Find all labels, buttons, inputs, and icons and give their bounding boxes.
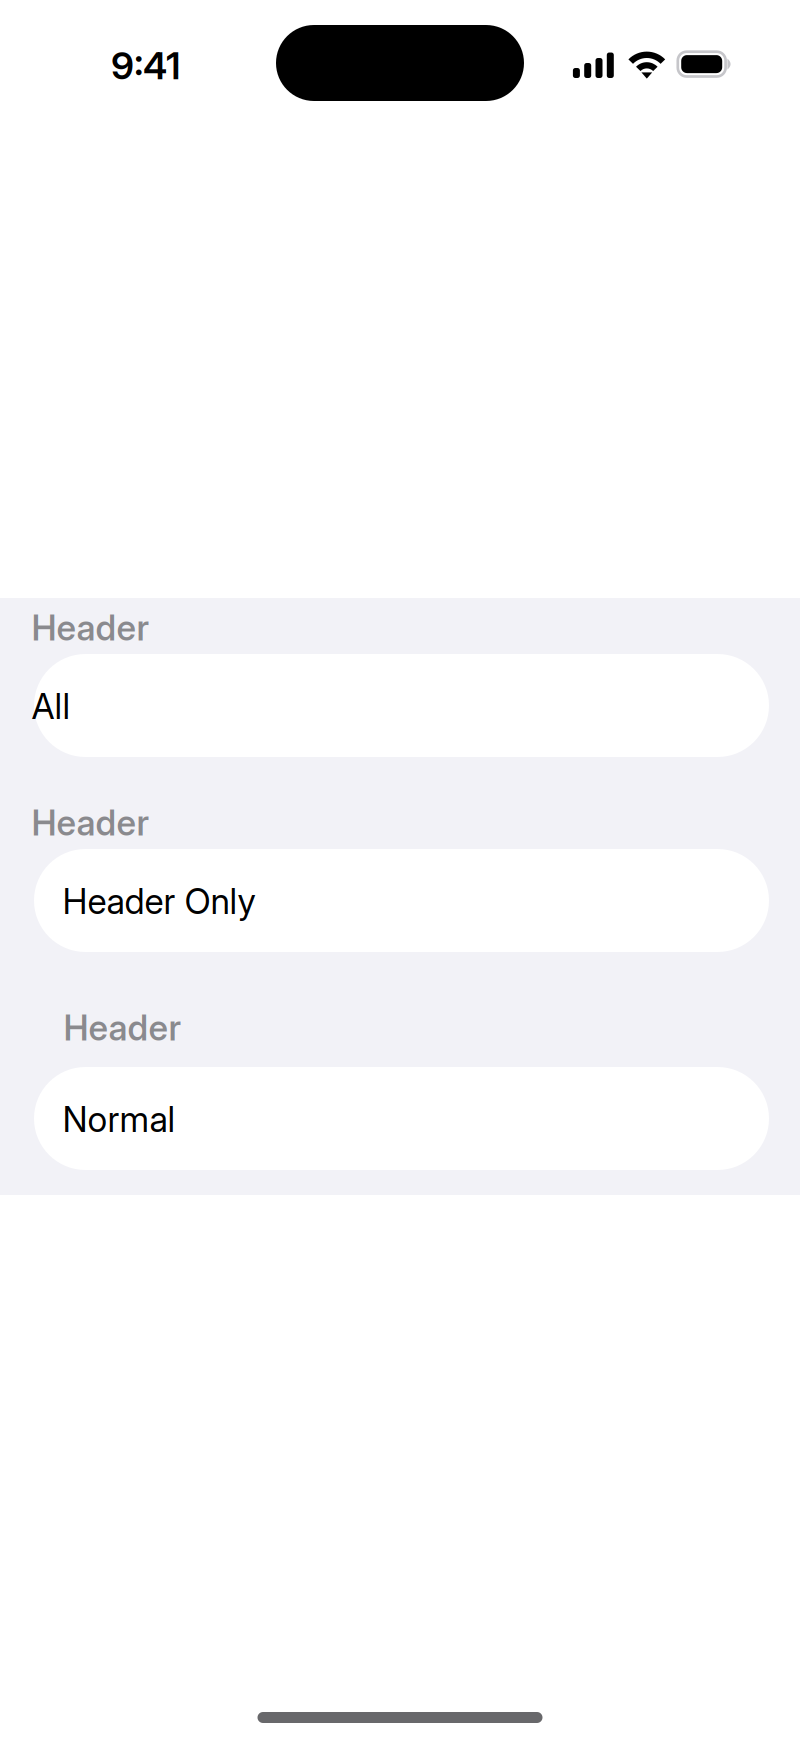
staticText: All	[31, 685, 70, 727]
staticText: Header Only	[62, 880, 255, 922]
staticText: 9:41	[111, 43, 181, 88]
button[interactable]: Header Only	[34, 849, 769, 952]
button[interactable]: Normal	[34, 1067, 769, 1170]
staticText: Normal	[62, 1098, 175, 1140]
button[interactable]: All	[34, 654, 769, 757]
staticText: Header	[31, 802, 149, 844]
staticText: Header	[63, 1007, 181, 1049]
staticText: Header	[31, 607, 149, 649]
